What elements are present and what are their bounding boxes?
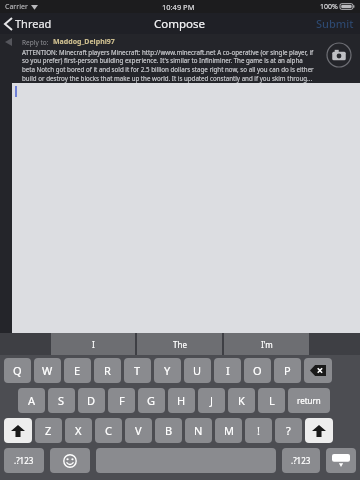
staticText: Y — [164, 363, 171, 378]
staticText: H — [177, 393, 186, 408]
staticText: N — [194, 423, 203, 438]
staticText: J — [210, 393, 214, 408]
button[interactable]: E — [64, 358, 91, 383]
staticText: A — [28, 393, 36, 408]
button[interactable]: return — [288, 388, 330, 413]
button[interactable]: I — [51, 333, 135, 355]
staticText: T — [134, 363, 141, 378]
button[interactable]: The — [137, 333, 222, 355]
staticText: ATTENTION: Minecraft players Minecraft: … — [22, 48, 316, 82]
button[interactable]: ! — [245, 418, 272, 443]
staticText: I — [92, 339, 95, 350]
button[interactable]: Hide keyboard — [326, 448, 356, 473]
staticText: 100% — [320, 2, 338, 12]
button[interactable]: .?123 — [4, 448, 44, 473]
staticText: F — [119, 393, 125, 408]
staticText: C — [105, 423, 112, 438]
staticText: I — [226, 363, 230, 378]
button[interactable]: T — [124, 358, 151, 383]
staticText: .?123 — [14, 455, 34, 466]
button[interactable]: Submit — [316, 16, 354, 31]
staticText: ? — [286, 423, 291, 438]
button[interactable]: A — [18, 388, 45, 413]
button[interactable]: .?123 — [282, 448, 320, 473]
staticText: I'm — [261, 339, 273, 350]
staticText: Submit — [316, 16, 354, 31]
staticText: U — [193, 363, 202, 378]
button[interactable]: R — [94, 358, 121, 383]
staticText: B — [165, 423, 173, 438]
staticText: P — [284, 363, 291, 378]
button[interactable]: S — [48, 388, 75, 413]
staticText: S — [58, 393, 65, 408]
button[interactable]: Q — [4, 358, 31, 383]
button[interactable]: J — [198, 388, 225, 413]
staticText: Compose — [154, 16, 206, 32]
staticText: G — [147, 393, 156, 408]
button[interactable]: D — [78, 388, 105, 413]
button[interactable]: V — [125, 418, 152, 443]
button[interactable]: B — [155, 418, 182, 443]
staticText: Carrier — [5, 2, 28, 12]
staticText: R — [104, 363, 111, 378]
button[interactable]: P — [274, 358, 301, 383]
staticText: ! — [257, 423, 260, 438]
staticText: Thread — [15, 16, 52, 31]
staticText: M — [224, 423, 234, 438]
button[interactable]: W — [34, 358, 61, 383]
staticText: V — [135, 423, 142, 438]
button[interactable]: I — [214, 358, 241, 383]
staticText: W — [42, 363, 53, 378]
button[interactable]: I'm — [224, 333, 309, 355]
button[interactable]: ? — [275, 418, 302, 443]
button[interactable]: F — [108, 388, 135, 413]
staticText: X — [75, 423, 82, 438]
button[interactable]: Attach photo — [326, 42, 352, 68]
staticText: O — [253, 363, 262, 378]
staticText: E — [74, 363, 81, 378]
button[interactable]: Emoji — [50, 448, 90, 473]
button[interactable]: X — [65, 418, 92, 443]
button[interactable]: M — [215, 418, 242, 443]
button[interactable]: Backspace — [304, 358, 332, 383]
staticText: D — [87, 393, 96, 408]
staticText: Q — [13, 363, 22, 378]
button[interactable]: C — [95, 418, 122, 443]
button[interactable]: Z — [35, 418, 62, 443]
staticText: Z — [45, 423, 52, 438]
button[interactable]: Y — [154, 358, 181, 383]
staticText: return — [297, 395, 321, 406]
staticText: K — [238, 393, 245, 408]
button[interactable]: O — [244, 358, 271, 383]
button[interactable]: L — [258, 388, 285, 413]
staticText: 10:49 PM — [162, 2, 195, 12]
staticText: L — [269, 393, 275, 408]
button[interactable]: G — [138, 388, 165, 413]
button[interactable]: N — [185, 418, 212, 443]
staticText: The — [173, 339, 187, 350]
staticText: .?123 — [291, 455, 311, 466]
button[interactable]: U — [184, 358, 211, 383]
staticText: Reply to: — [22, 38, 49, 47]
button[interactable]: Shift — [4, 418, 32, 443]
staticText: Maddog_Delphi97 — [53, 37, 115, 47]
button[interactable]: K — [228, 388, 255, 413]
button[interactable]: Thread — [5, 16, 52, 31]
button[interactable]: Shift — [305, 418, 333, 443]
button[interactable]: H — [168, 388, 195, 413]
